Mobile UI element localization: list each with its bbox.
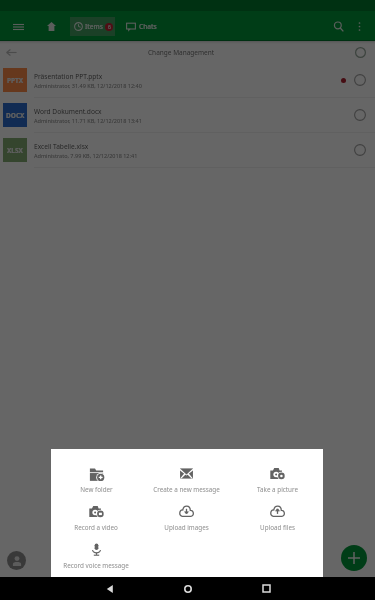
staticText: 6 bbox=[108, 24, 111, 31]
staticText: New folder bbox=[80, 485, 113, 494]
staticText: Word Dokument.docx bbox=[34, 107, 102, 116]
button[interactable]: Select all bbox=[352, 44, 368, 60]
button[interactable]: Items bbox=[74, 17, 113, 36]
staticText: Record voice message bbox=[63, 561, 129, 570]
staticText: XLSX bbox=[7, 146, 23, 155]
button[interactable]: PPTX bbox=[0, 63, 375, 97]
button[interactable]: Record voice message bbox=[51, 542, 141, 570]
button[interactable]: DOCX bbox=[0, 98, 375, 132]
staticText: Upload images bbox=[164, 523, 209, 532]
staticText: Administrator, 11.71 KB, 12/12/2018 13:4… bbox=[34, 117, 142, 124]
button[interactable]: Back bbox=[92, 577, 128, 600]
button[interactable]: Account bbox=[7, 551, 26, 570]
button[interactable]: New folder bbox=[51, 466, 141, 494]
staticText: Präsentation PPT.pptx bbox=[34, 72, 103, 81]
button[interactable]: Chats bbox=[126, 17, 157, 36]
staticText: Chats bbox=[139, 22, 157, 31]
button[interactable]: Search bbox=[328, 16, 348, 36]
button[interactable]: Home bbox=[44, 19, 58, 33]
button[interactable]: Create a new message bbox=[141, 466, 232, 494]
staticText: Create a new message bbox=[153, 485, 220, 494]
button[interactable]: Back bbox=[2, 43, 20, 61]
staticText: PPTX bbox=[7, 76, 24, 85]
button[interactable]: Take a picture bbox=[232, 466, 323, 494]
button[interactable]: Add bbox=[341, 545, 367, 571]
staticText: Excell Tabelle.xlsx bbox=[34, 142, 89, 151]
button[interactable]: More options bbox=[349, 16, 369, 36]
staticText: Take a picture bbox=[257, 485, 298, 494]
button[interactable]: Record a video bbox=[51, 504, 141, 532]
button[interactable]: Recent apps bbox=[248, 577, 284, 600]
staticText: Items bbox=[85, 22, 103, 31]
button[interactable]: Select item bbox=[352, 107, 368, 123]
button[interactable]: Home bbox=[170, 577, 206, 600]
button[interactable]: XLSX bbox=[0, 133, 375, 167]
staticText: Upload files bbox=[260, 523, 295, 532]
button[interactable]: Select item bbox=[352, 142, 368, 158]
button[interactable]: Upload files bbox=[232, 504, 323, 532]
staticText: Record a video bbox=[74, 523, 118, 532]
button[interactable]: Upload images bbox=[141, 504, 232, 532]
button[interactable]: Select item bbox=[352, 72, 368, 88]
staticText: Administrator, 31.49 KB, 12/12/2018 12:4… bbox=[34, 82, 142, 89]
staticText: Change Management bbox=[148, 48, 215, 57]
staticText: Administrato, 7.99 KB, 12/12/2018 12:41 bbox=[34, 152, 138, 159]
staticText: DOCX bbox=[6, 111, 25, 120]
button[interactable]: Navigation menu bbox=[12, 20, 25, 33]
